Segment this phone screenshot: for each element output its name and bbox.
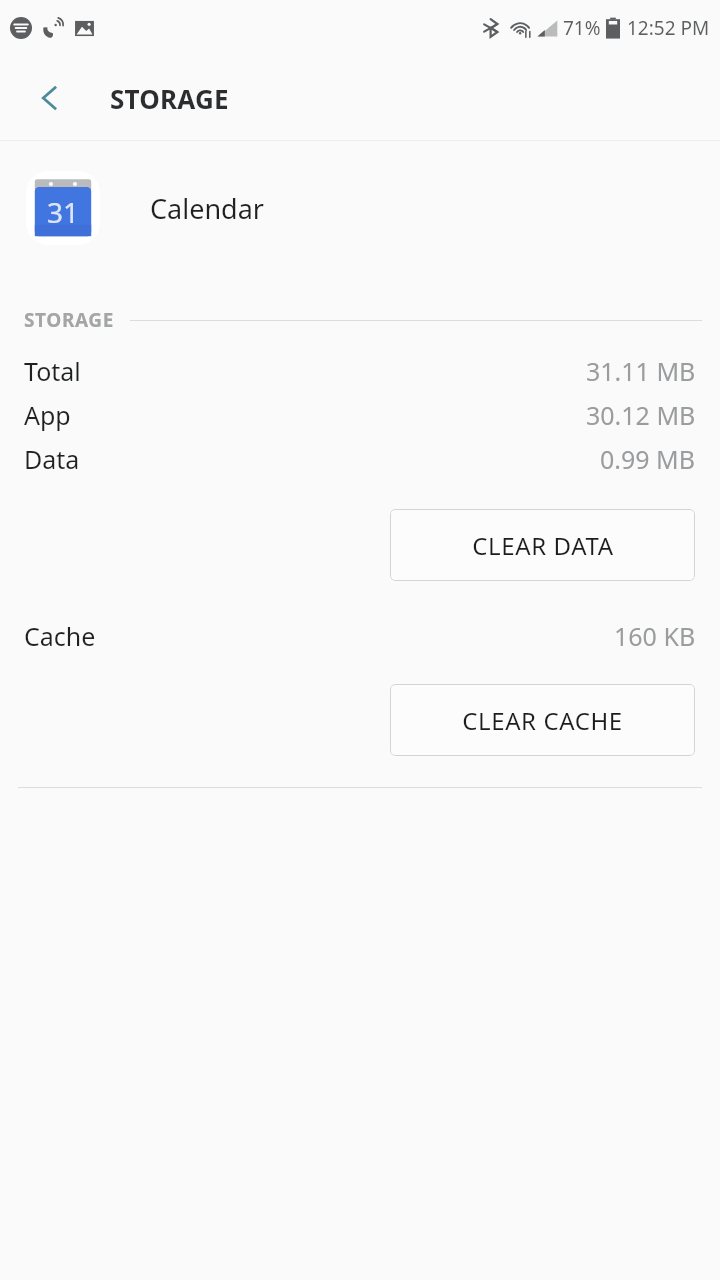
button[interactable]: CLEAR DATA bbox=[390, 509, 695, 581]
staticText: 31 bbox=[47, 193, 80, 231]
staticText: 160 KB bbox=[614, 619, 696, 653]
button[interactable]: Back bbox=[22, 70, 78, 126]
staticText: STORAGE bbox=[24, 307, 114, 333]
staticText: Total bbox=[24, 354, 81, 388]
staticText: App bbox=[24, 398, 71, 432]
button[interactable]: CLEAR CACHE bbox=[390, 684, 695, 756]
staticText: Cache bbox=[24, 619, 96, 653]
staticText: STORAGE bbox=[110, 81, 229, 116]
staticText: Calendar bbox=[150, 190, 264, 227]
staticText: Data bbox=[24, 442, 80, 476]
staticText: 30.12 MB bbox=[586, 398, 696, 432]
staticText: 12:52 PM bbox=[627, 15, 710, 41]
staticText: 0.99 MB bbox=[600, 442, 696, 476]
staticText: 71% bbox=[563, 15, 601, 41]
staticText: CLEAR DATA bbox=[472, 529, 614, 562]
staticText: 31.11 MB bbox=[586, 354, 696, 388]
staticText: CLEAR CACHE bbox=[462, 704, 623, 737]
